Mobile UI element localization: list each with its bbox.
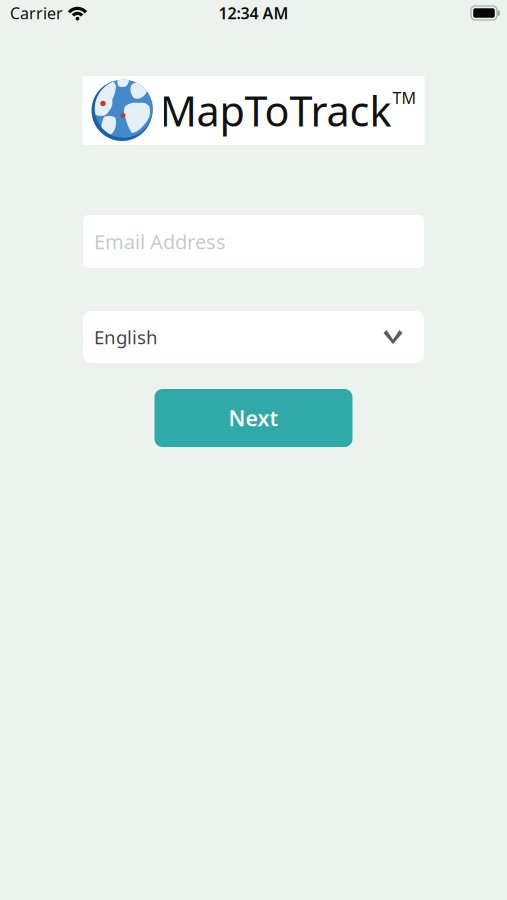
staticText: TM bbox=[392, 87, 416, 108]
staticText: Email Address bbox=[94, 228, 226, 255]
staticText: MapToTrack bbox=[159, 83, 391, 138]
button[interactable]: Select language bbox=[83, 311, 424, 363]
staticText: 12:34 AM bbox=[218, 2, 288, 24]
staticText: Carrier bbox=[10, 2, 63, 24]
button[interactable]: Next bbox=[154, 389, 352, 447]
button[interactable]: Email Address bbox=[83, 215, 424, 268]
staticText: Next bbox=[228, 404, 278, 432]
staticText: English bbox=[94, 325, 158, 349]
